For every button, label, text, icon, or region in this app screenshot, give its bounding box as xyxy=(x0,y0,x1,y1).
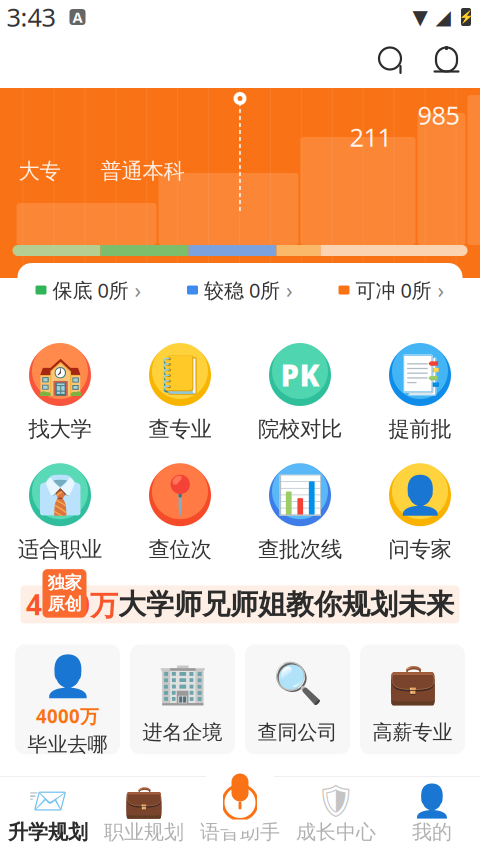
button[interactable]: 📊 xyxy=(240,464,360,562)
button[interactable]: Search xyxy=(365,34,419,88)
staticText: 较稳 0所 xyxy=(204,277,280,303)
staticText: 语音助手 xyxy=(200,820,280,844)
staticText: 适合职业 xyxy=(18,536,102,562)
button[interactable]: 可冲 0所 xyxy=(338,270,444,310)
staticText: 毕业去哪 xyxy=(27,732,107,757)
staticText: 👤 xyxy=(412,782,452,819)
button[interactable]: 👤 xyxy=(360,464,480,562)
staticText: › xyxy=(286,276,293,304)
button[interactable]: 👤 xyxy=(15,644,120,754)
button[interactable]: 💼 xyxy=(96,777,192,853)
staticText: 👤 xyxy=(42,654,92,700)
button[interactable]: 👔 xyxy=(0,464,120,562)
button[interactable]: 👤 xyxy=(384,777,480,853)
staticText: 💼 xyxy=(387,660,437,706)
button[interactable]: 💼 xyxy=(360,644,465,754)
staticText: 985 xyxy=(417,98,459,132)
staticText: 📒 xyxy=(157,354,203,396)
staticText: 保底 0所 xyxy=(52,277,128,303)
staticText: › xyxy=(134,276,141,304)
staticText: 查批次线 xyxy=(258,536,342,562)
staticText: 🏢 xyxy=(157,660,207,706)
staticText: 4000万 xyxy=(26,586,118,623)
staticText: 成长中心 xyxy=(296,820,376,844)
staticText: 原创 xyxy=(47,593,81,615)
staticText: 4000万 xyxy=(36,704,99,728)
staticText: 职业规划 xyxy=(104,820,184,844)
staticText: 211 xyxy=(349,120,391,154)
staticText: 📍 xyxy=(157,474,203,517)
button[interactable]: 🔍 xyxy=(245,644,350,754)
staticText: 升学规划 xyxy=(8,820,88,844)
button[interactable]: Voice assistant xyxy=(202,755,278,831)
button[interactable]: 🛡 xyxy=(288,777,384,853)
staticText: 高薪专业 xyxy=(372,720,452,745)
button[interactable]: Notifications xyxy=(419,34,473,88)
staticText: ⚡ xyxy=(458,10,473,24)
staticText: ▼ xyxy=(412,6,427,28)
staticText: ◢ xyxy=(435,6,450,28)
staticText: A xyxy=(72,7,82,27)
staticText: 大专 xyxy=(18,158,60,184)
staticText: 我的 xyxy=(412,820,452,844)
staticText: 📨 xyxy=(28,782,68,819)
button[interactable]: 📨 xyxy=(0,777,96,853)
staticText: › xyxy=(437,276,444,304)
staticText: 3:43 xyxy=(6,0,55,34)
staticText: 进名企境 xyxy=(142,720,222,745)
staticText: 院校对比 xyxy=(258,416,342,442)
staticText: PK xyxy=(280,355,319,394)
button[interactable]: 📒 xyxy=(120,344,240,442)
staticText: 👔 xyxy=(37,474,83,517)
staticText: 找大学 xyxy=(28,416,91,442)
staticText: 提前批 xyxy=(388,416,451,442)
staticText: 查位次 xyxy=(148,536,211,562)
button[interactable]: 🏢 xyxy=(130,644,235,754)
staticText: 📊 xyxy=(277,474,323,517)
staticText: 大学师兄师姐教你规划未来 xyxy=(118,587,454,622)
button[interactable]: 📑 xyxy=(360,344,480,442)
staticText: 📑 xyxy=(397,354,443,396)
staticText: 独家 xyxy=(47,572,81,593)
staticText: 查专业 xyxy=(148,416,211,442)
button[interactable]: 语音助手 xyxy=(192,777,288,853)
staticText: 可冲 0所 xyxy=(355,277,431,303)
staticText: 查同公司 xyxy=(257,720,337,745)
button[interactable]: 📍 xyxy=(120,464,240,562)
button[interactable]: 🏫 xyxy=(0,344,120,442)
staticText: 🔍 xyxy=(272,660,322,706)
staticText: 👤 xyxy=(397,474,443,517)
staticText: 问专家 xyxy=(388,536,451,562)
staticText: 🏫 xyxy=(37,354,83,396)
staticText: 普通本科 xyxy=(100,158,184,184)
button[interactable]: PK xyxy=(240,344,360,442)
button[interactable]: 4000万 xyxy=(0,576,480,632)
staticText: 🛡 xyxy=(315,782,356,819)
button[interactable]: 较稳 0所 xyxy=(187,270,293,310)
button[interactable]: 保底 0所 xyxy=(35,270,141,310)
staticText: 💼 xyxy=(124,782,164,819)
